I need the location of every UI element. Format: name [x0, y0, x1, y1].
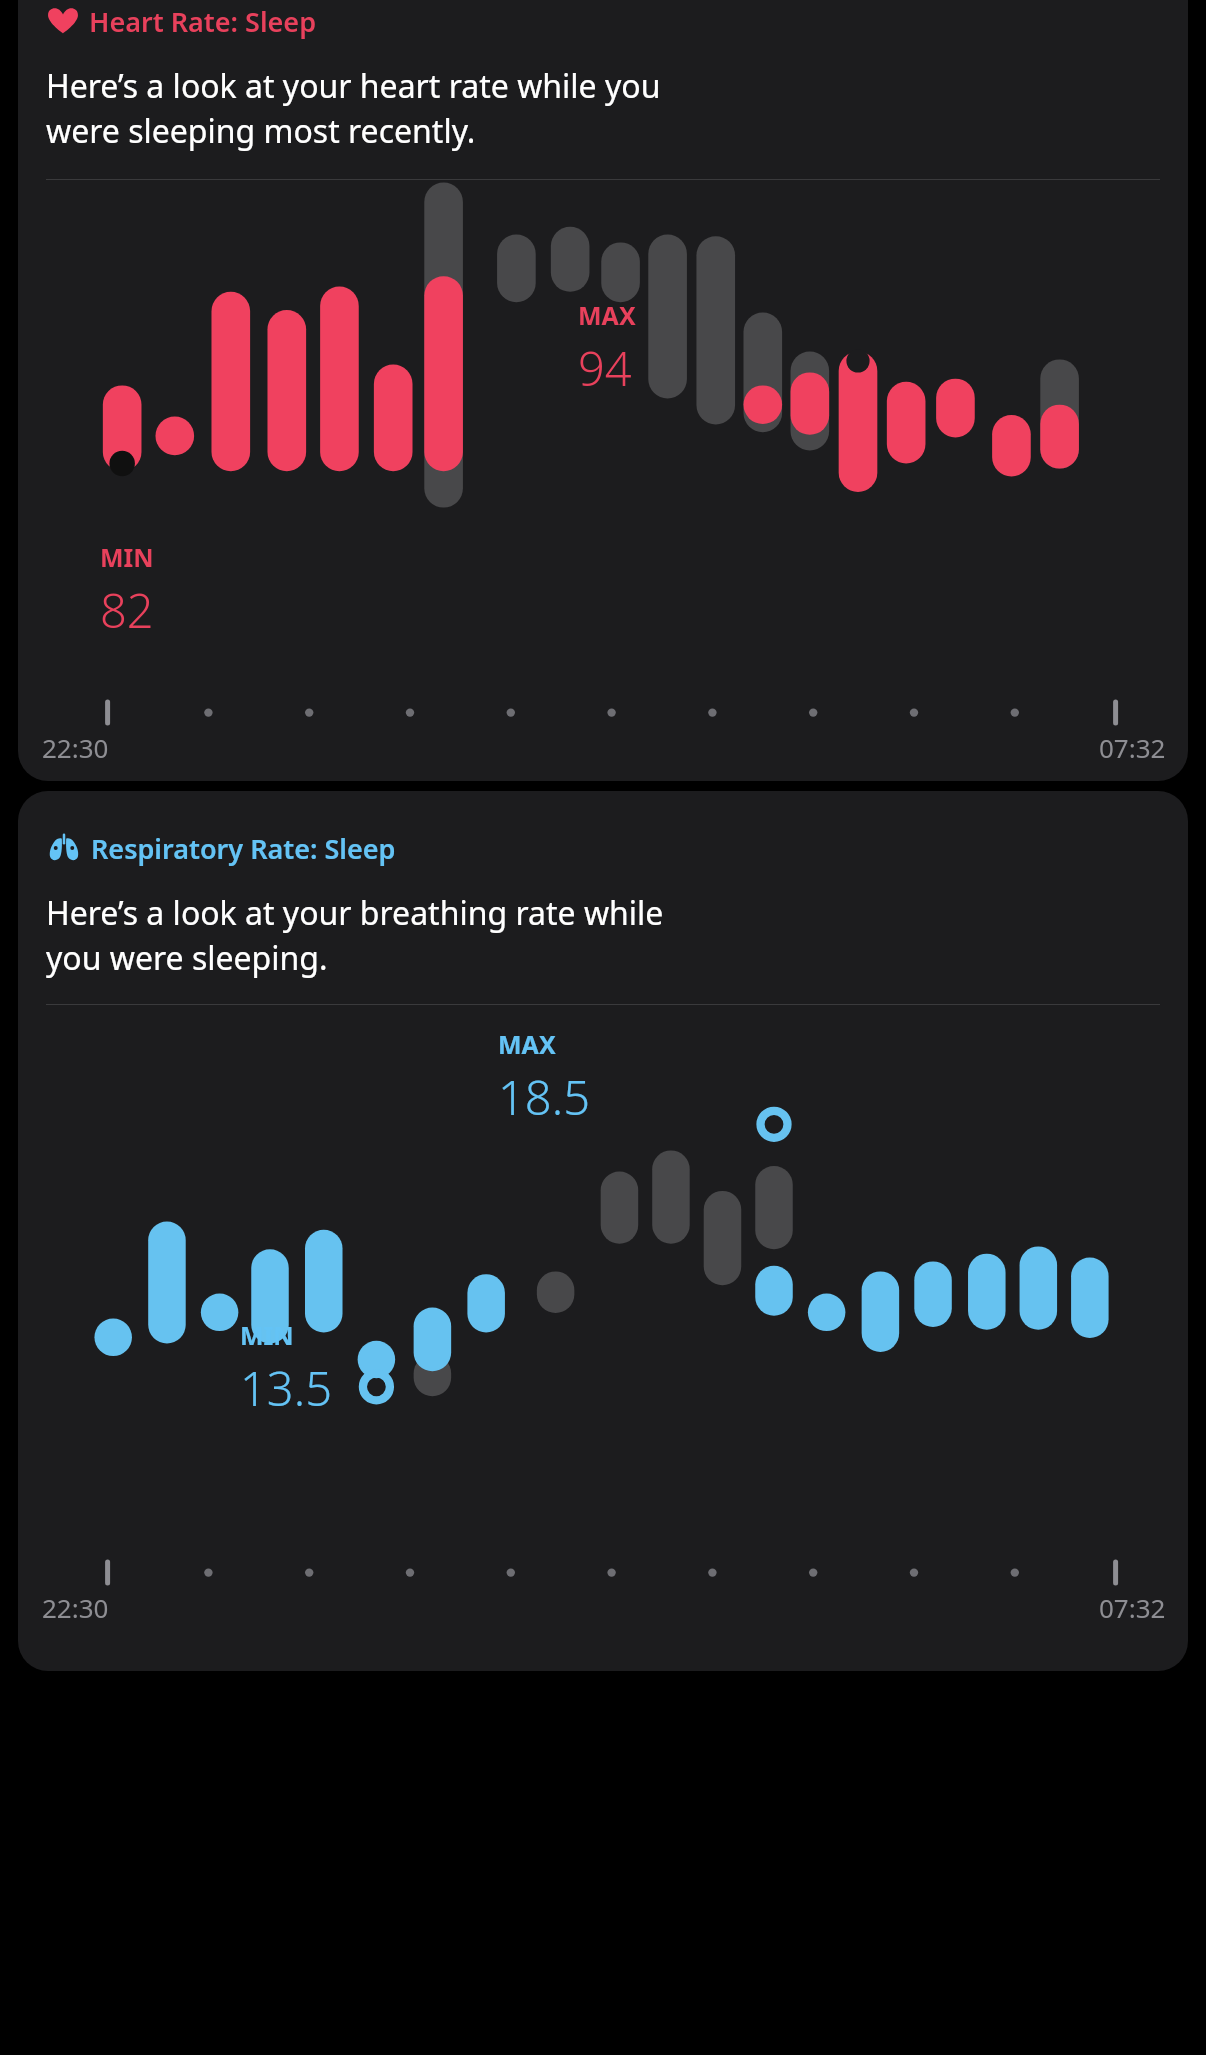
staticText: 07:32 — [1099, 730, 1166, 765]
staticText: 07:32 — [1099, 1590, 1166, 1625]
staticText: Heart Rate: Sleep — [89, 3, 317, 40]
button[interactable]: Lungs — [18, 791, 1188, 1671]
staticText: 18.5 — [498, 1065, 590, 1129]
staticText: 94 — [578, 336, 632, 400]
other: Heart — [46, 4, 80, 38]
staticText: MAX — [498, 1027, 556, 1061]
staticText: Here’s a look at your breathing rate whi… — [46, 891, 664, 980]
staticText: 22:30 — [42, 730, 109, 765]
staticText: 82 — [100, 578, 154, 642]
staticText: 22:30 — [42, 1590, 109, 1625]
staticText: MIN — [100, 540, 154, 574]
staticText: 13.5 — [240, 1356, 332, 1420]
staticText: MAX — [578, 298, 636, 332]
staticText: Respiratory Rate: Sleep — [91, 830, 396, 867]
button[interactable]: Heart — [18, 0, 1188, 781]
staticText: Here’s a look at your heart rate while y… — [46, 64, 661, 153]
other: Lungs — [46, 830, 82, 866]
staticText: MIN — [240, 1318, 294, 1352]
